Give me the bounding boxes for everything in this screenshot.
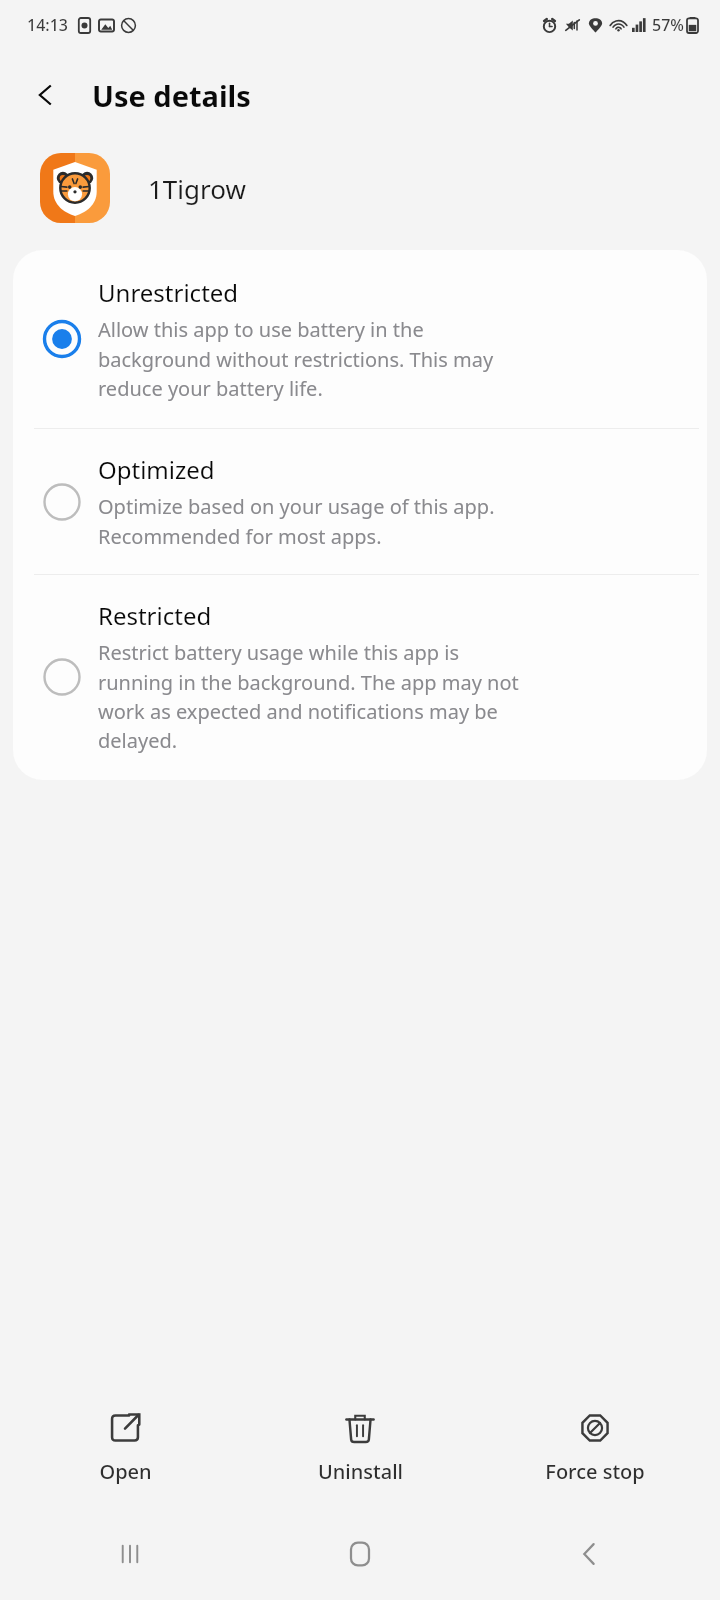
staticText: Uninstall	[318, 1458, 403, 1485]
button[interactable]: Force stop	[485, 1403, 705, 1493]
button[interactable]: Back	[490, 1508, 690, 1600]
staticText: Allow this app to use battery in the bac…	[98, 316, 494, 402]
staticText: Optimized	[98, 453, 215, 486]
button[interactable]: Open	[15, 1403, 235, 1493]
staticText: Use details	[92, 76, 251, 115]
staticText: 1Tigrow	[148, 171, 246, 206]
button[interactable]: Back	[22, 71, 70, 119]
button[interactable]: Restricted	[13, 575, 707, 780]
button[interactable]: Optimized	[13, 429, 707, 574]
staticText: Restricted	[98, 599, 212, 632]
staticText: Unrestricted	[98, 276, 239, 309]
staticText: 14:13	[27, 14, 68, 36]
staticText: Optimize based on your usage of this app…	[98, 493, 495, 550]
button[interactable]: Uninstall	[250, 1403, 470, 1493]
staticText: Force stop	[545, 1458, 645, 1485]
staticText: 57%	[652, 14, 684, 36]
staticText: Open	[99, 1458, 152, 1485]
staticText: Restrict battery usage while this app is…	[98, 639, 519, 754]
button[interactable]: Unrestricted	[13, 250, 707, 428]
button[interactable]: Recents	[30, 1508, 230, 1600]
button[interactable]: Home	[260, 1508, 460, 1600]
